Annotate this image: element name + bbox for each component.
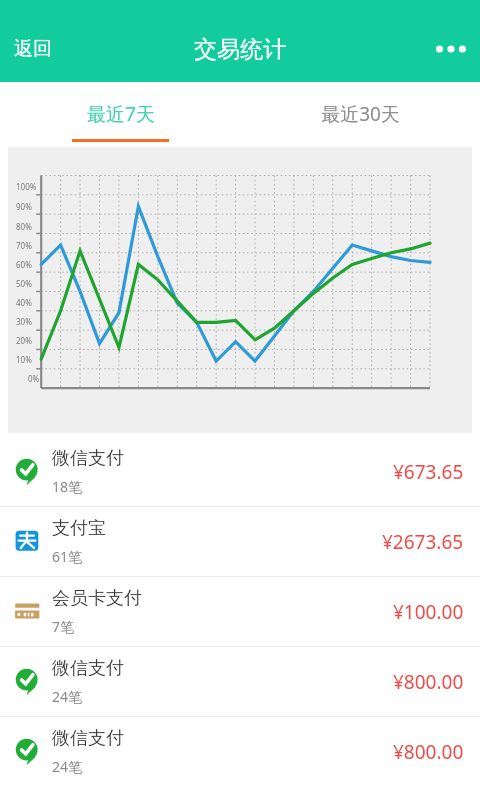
button[interactable]: 微信支付	[0, 437, 480, 506]
staticText: 会员卡支付	[52, 587, 142, 610]
staticText: 微信支付	[52, 447, 124, 470]
staticText: 30%	[16, 316, 32, 327]
staticText: 微信支付	[52, 657, 124, 680]
button[interactable]: 最近7天	[0, 82, 240, 142]
button[interactable]: 最近30天	[240, 82, 480, 142]
button[interactable]: 支付宝	[0, 507, 480, 576]
staticText: 10%	[16, 354, 32, 365]
staticText: ¥673.65	[393, 459, 464, 485]
staticText: 24笔	[52, 757, 83, 776]
staticText: 70%	[16, 240, 32, 251]
button[interactable]: 返回	[0, 29, 66, 69]
staticText: 最近30天	[321, 101, 400, 127]
button[interactable]: 会员卡支付	[0, 577, 480, 646]
staticText: 80%	[16, 221, 32, 232]
staticText: 微信支付	[52, 727, 124, 750]
staticText: 24笔	[52, 687, 83, 706]
button[interactable]: 微信支付	[0, 717, 480, 786]
staticText: 100%	[16, 181, 37, 192]
staticText: 61笔	[52, 547, 83, 566]
staticText: ¥2673.65	[382, 529, 464, 555]
staticText: 最近7天	[87, 101, 155, 127]
staticText: 60%	[16, 259, 32, 270]
staticText: 返回	[14, 37, 52, 61]
staticText: 7笔	[52, 617, 75, 636]
staticText: 0%	[28, 373, 40, 384]
staticText: ¥800.00	[393, 739, 464, 765]
staticText: 支付宝	[52, 517, 106, 540]
staticText: 40%	[16, 297, 32, 308]
button[interactable]: More options	[426, 28, 480, 70]
button[interactable]: 微信支付	[0, 647, 480, 716]
staticText: 90%	[16, 201, 32, 212]
staticText: 50%	[16, 278, 32, 289]
staticText: 交易统计	[194, 35, 286, 64]
staticText: 18笔	[52, 477, 83, 496]
staticText: 20%	[16, 335, 32, 346]
staticText: ¥100.00	[393, 599, 464, 625]
staticText: ¥800.00	[393, 669, 464, 695]
